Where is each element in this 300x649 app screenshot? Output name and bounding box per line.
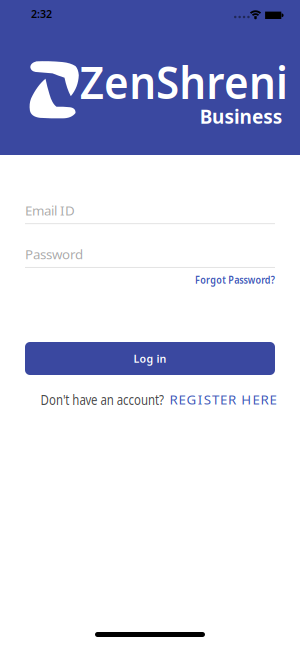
button[interactable]: Email ID [25, 201, 275, 224]
staticText: Password [25, 245, 83, 263]
button[interactable]: Log in [25, 342, 275, 375]
button[interactable]: Password [25, 245, 275, 268]
staticText: Email ID [25, 201, 75, 219]
staticText: REGISTER HERE [169, 390, 277, 408]
button[interactable]: REGISTER HERE [169, 390, 277, 408]
staticText: Forgot Password? [188, 272, 282, 287]
staticText: Log in [133, 351, 166, 366]
staticText: ZenShreni [72, 51, 296, 112]
staticText: 2:32 [31, 7, 52, 21]
button[interactable]: Forgot Password? [188, 272, 282, 287]
staticText: Don't have an account? [23, 390, 181, 409]
staticText: Business [197, 103, 284, 129]
